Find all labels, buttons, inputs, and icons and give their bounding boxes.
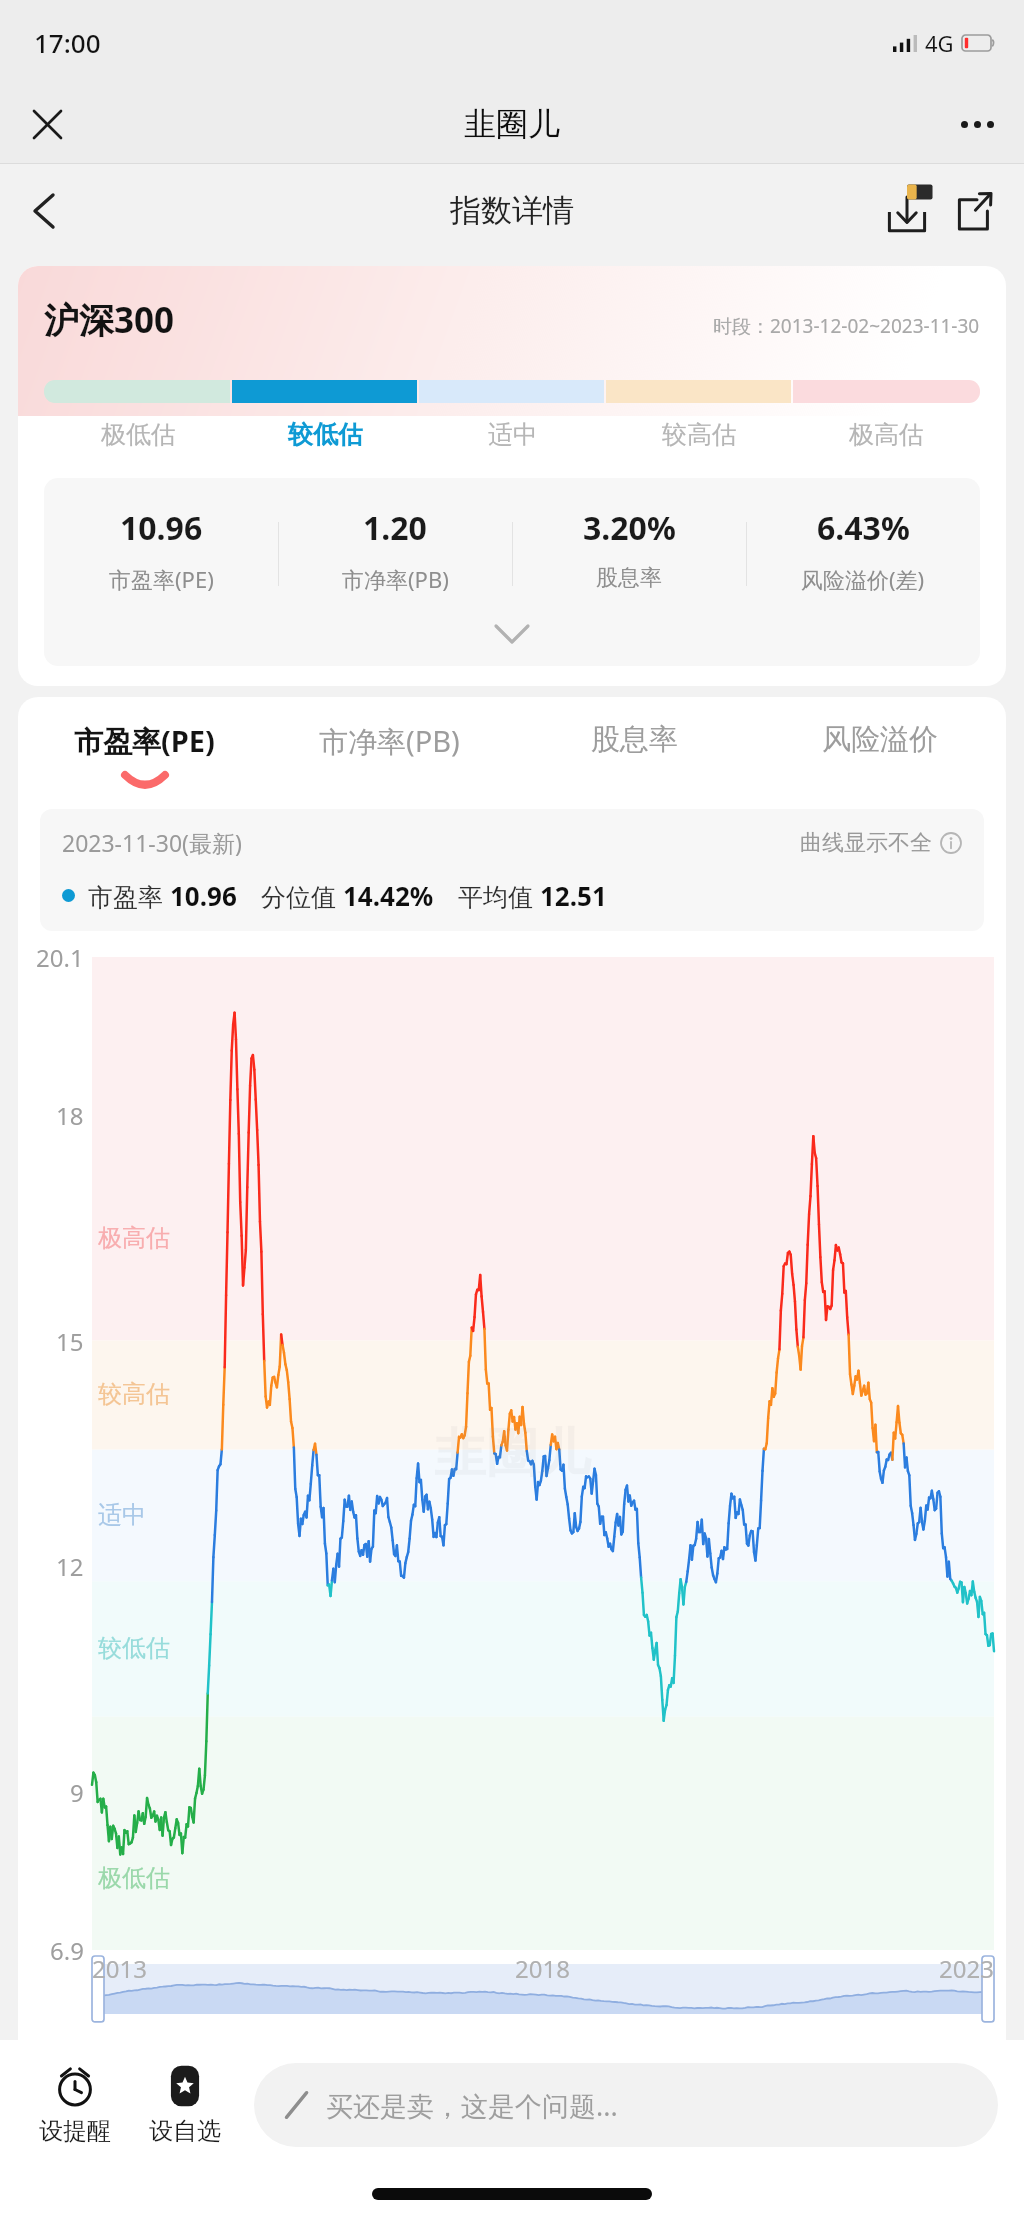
- button[interactable]: Curve info: [800, 829, 962, 857]
- button[interactable]: 风险溢价: [757, 721, 1002, 782]
- staticText: 较低估: [98, 1633, 170, 1663]
- staticText: 曲线显示不全: [800, 829, 932, 857]
- staticText: 3.20%: [583, 506, 676, 550]
- button[interactable]: 股息率: [512, 721, 757, 782]
- button[interactable]: [44, 380, 230, 403]
- staticText: 设自选: [149, 2116, 221, 2146]
- staticText: 18: [56, 1099, 84, 1132]
- staticText: 10.96: [120, 506, 203, 550]
- staticText: 2023: [939, 1952, 994, 1985]
- staticText: 买还是卖，这是个问题...: [326, 2087, 618, 2124]
- staticText: 2013: [92, 1952, 147, 1985]
- button[interactable]: More options: [946, 93, 1008, 155]
- staticText: 股息率: [596, 564, 662, 592]
- staticText: 10.96: [170, 878, 237, 913]
- staticText: 极高估: [849, 419, 924, 450]
- button[interactable]: 买还是卖，这是个问题...: [254, 2063, 998, 2147]
- button[interactable]: 设提醒: [20, 2040, 130, 2170]
- staticText: 平均值: [458, 879, 540, 913]
- staticText: 14.42%: [343, 878, 434, 913]
- staticText: 6.43%: [817, 506, 910, 550]
- staticText: 17:00: [34, 25, 101, 60]
- button[interactable]: [793, 380, 980, 403]
- staticText: 沪深300: [44, 296, 175, 344]
- button[interactable]: Back: [12, 179, 76, 243]
- staticText: 20.1: [36, 941, 84, 974]
- staticText: 极高估: [98, 1223, 170, 1253]
- staticText: 市净率(PB): [319, 721, 460, 761]
- staticText: 股息率: [591, 721, 678, 758]
- staticText: 市净率(PB): [342, 564, 449, 594]
- staticText: 2023-11-30(最新): [62, 827, 242, 858]
- staticText: 时段：2013-12-02~2023-11-30: [713, 313, 980, 339]
- button[interactable]: Close: [16, 93, 78, 155]
- staticText: 6.9: [50, 1934, 84, 1967]
- button[interactable]: 市盈率(PE): [22, 721, 267, 785]
- button[interactable]: Expand details: [44, 602, 980, 666]
- staticText: 韭圈儿: [464, 104, 560, 144]
- staticText: 1.20: [363, 506, 427, 550]
- staticText: 韭圈儿: [434, 1421, 590, 1487]
- staticText: 极低估: [98, 1863, 170, 1893]
- button[interactable]: 市净率(PB): [267, 721, 512, 785]
- staticText: 12.51: [540, 878, 607, 913]
- staticText: 极低估: [101, 419, 176, 450]
- staticText: 设提醒: [39, 2116, 111, 2146]
- staticText: 指数详情: [450, 191, 574, 230]
- staticText: 市盈率(PE): [74, 721, 215, 761]
- staticText: 15: [56, 1325, 84, 1358]
- staticText: 2018: [515, 1952, 570, 1985]
- staticText: 适中: [488, 419, 538, 450]
- staticText: 适中: [98, 1500, 146, 1530]
- staticText: 较低估: [288, 419, 363, 450]
- staticText: 市盈率: [88, 879, 170, 913]
- staticText: 风险溢价(差): [801, 564, 925, 594]
- staticText: 9: [70, 1776, 84, 1809]
- button[interactable]: Share: [944, 182, 1002, 240]
- staticText: 4G: [925, 28, 954, 58]
- staticText: 较高估: [662, 419, 737, 450]
- staticText: 较高估: [98, 1379, 170, 1409]
- staticText: 12: [56, 1550, 84, 1583]
- button[interactable]: Download: [878, 182, 936, 240]
- staticText: 分位值: [261, 879, 343, 913]
- staticText: 风险溢价: [822, 721, 938, 758]
- button[interactable]: 设自选: [130, 2040, 240, 2170]
- staticText: 市盈率(PE): [109, 564, 214, 594]
